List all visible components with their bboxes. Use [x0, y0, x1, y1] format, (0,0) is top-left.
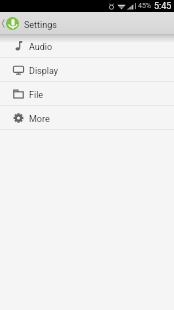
staticText: Audio	[29, 42, 53, 53]
staticText: More	[29, 114, 50, 125]
staticText: Display	[29, 66, 59, 77]
staticText: 5:45	[154, 1, 172, 12]
button[interactable]: More	[0, 106, 174, 130]
staticText: 45%	[138, 2, 151, 10]
staticText: Settings	[24, 20, 57, 31]
staticText: File	[29, 90, 44, 101]
button[interactable]: Display	[0, 58, 174, 82]
button[interactable]: Audio	[0, 34, 174, 58]
button[interactable]: File	[0, 82, 174, 106]
button[interactable]: Navigate up	[0, 12, 174, 34]
